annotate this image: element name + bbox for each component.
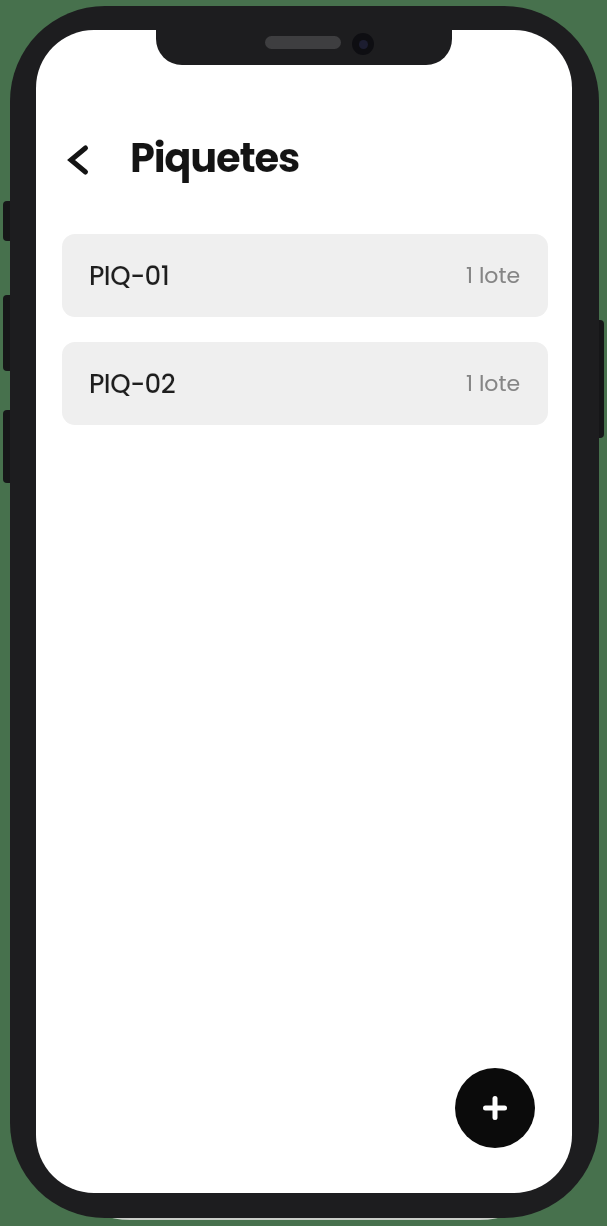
- staticText: PIQ-02: [89, 366, 176, 402]
- staticText: 1 lote: [466, 260, 521, 291]
- staticText: 1 lote: [466, 368, 521, 399]
- staticText: Piquetes: [130, 130, 300, 186]
- button[interactable]: PIQ-01: [62, 234, 548, 317]
- button[interactable]: [455, 1068, 535, 1148]
- button[interactable]: [58, 136, 100, 184]
- staticText: PIQ-01: [89, 258, 170, 294]
- button[interactable]: PIQ-02: [62, 342, 548, 425]
